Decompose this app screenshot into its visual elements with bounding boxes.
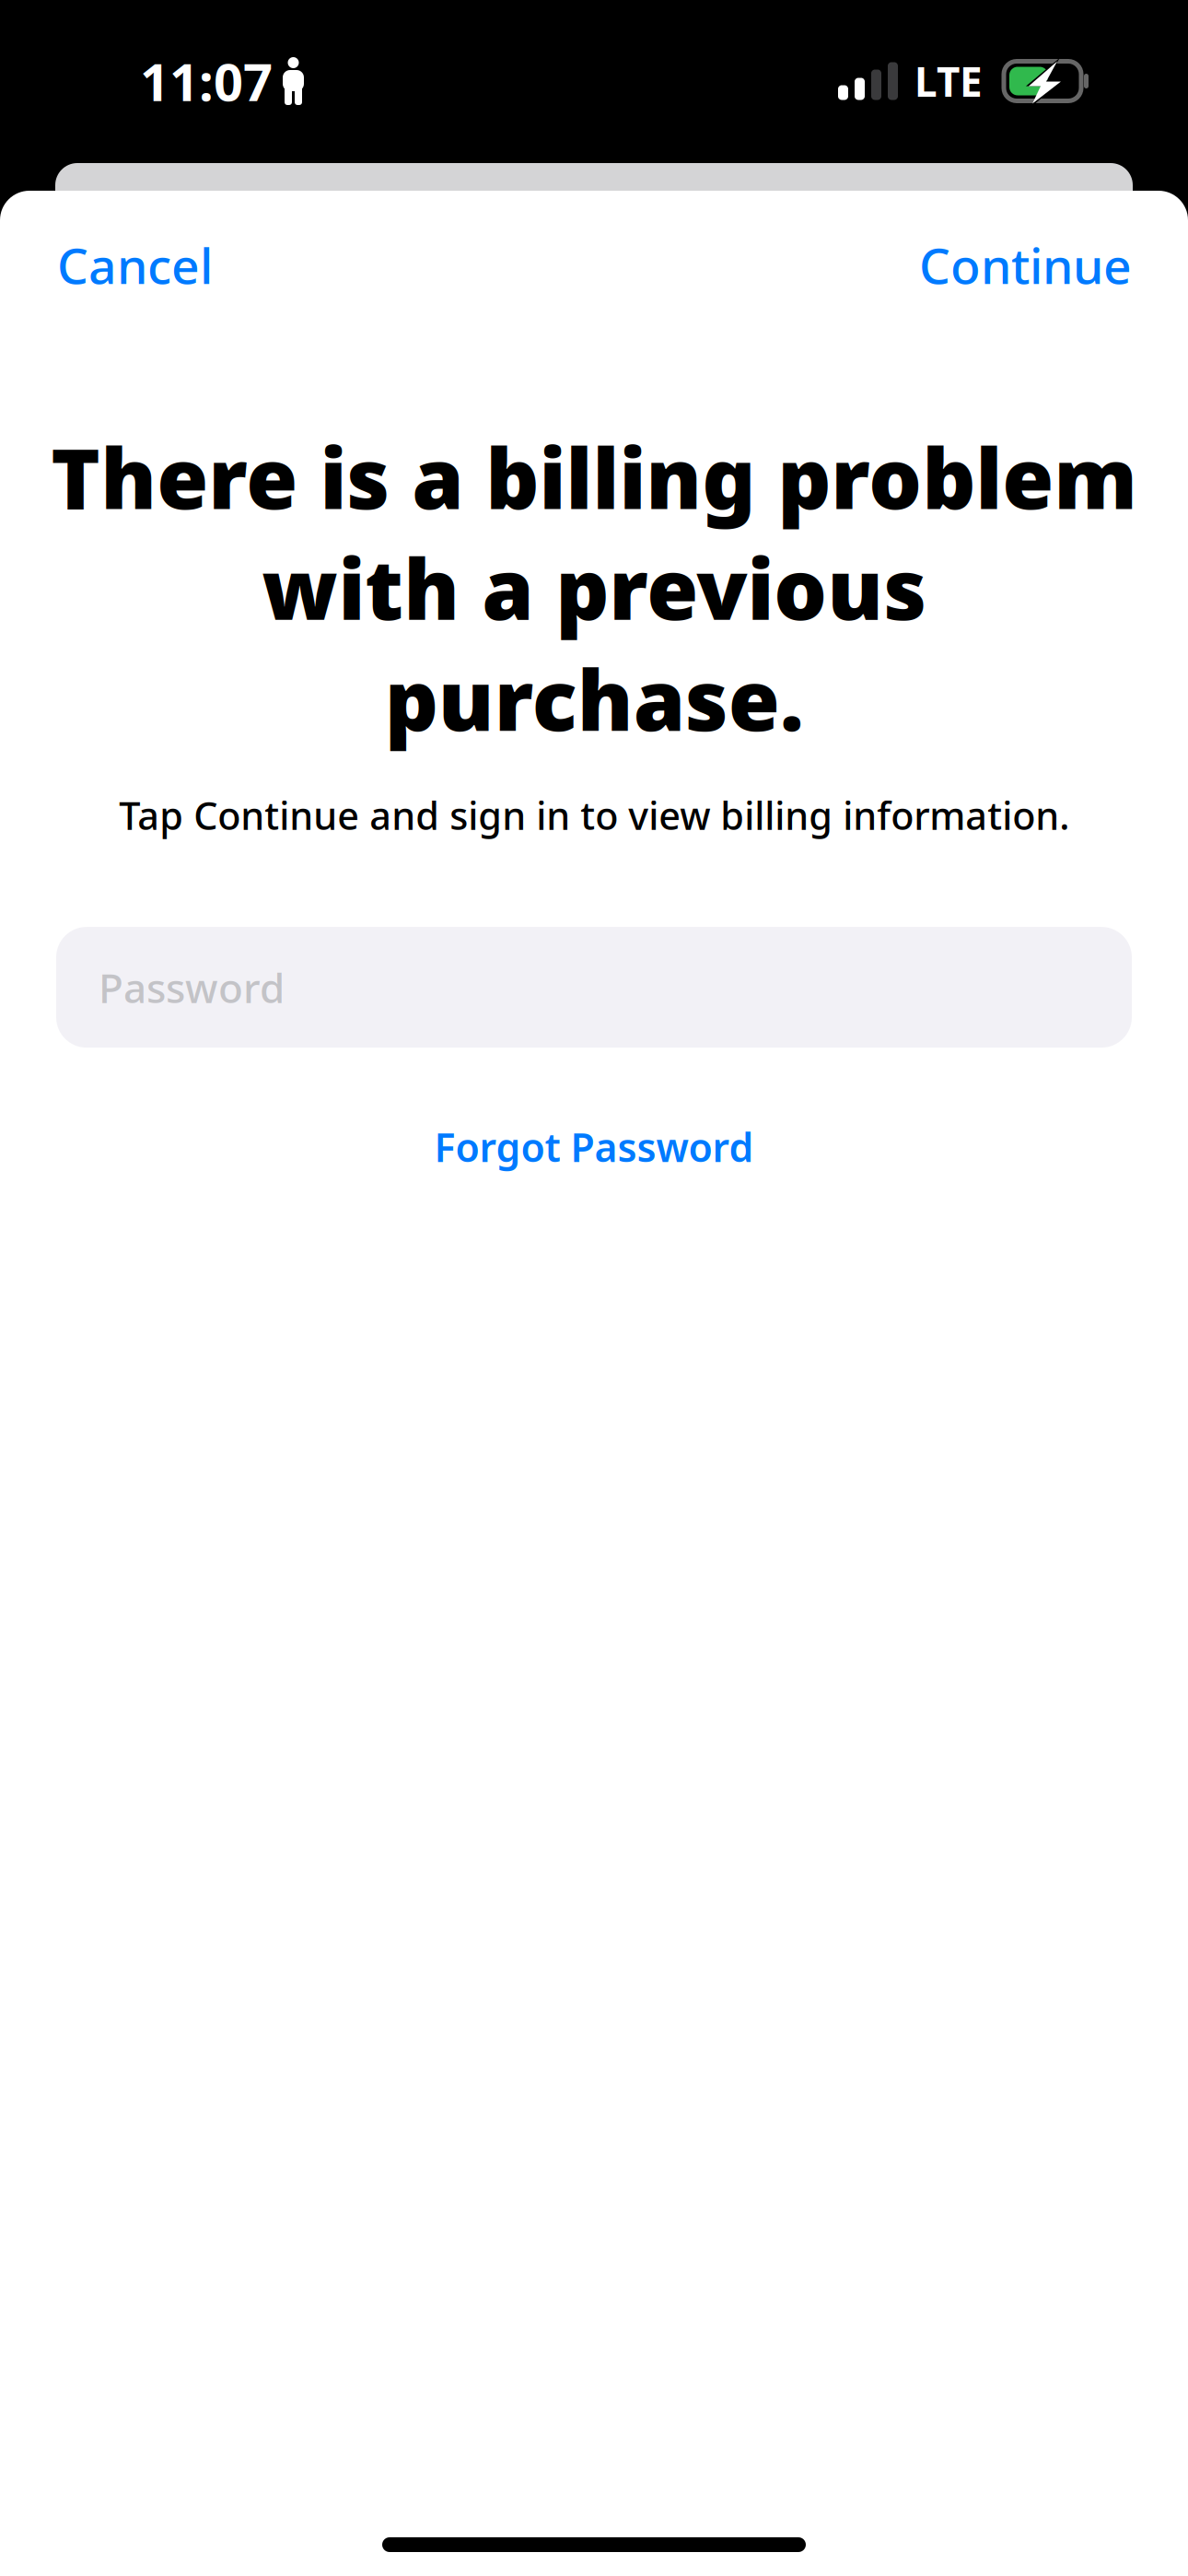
staticText: There is a billing problem with a previo… bbox=[51, 421, 1137, 754]
staticText: Forgot Password bbox=[434, 1121, 754, 1173]
button[interactable]: Cancel bbox=[57, 205, 213, 325]
staticText: Password bbox=[99, 960, 285, 1014]
staticText: 11:07 bbox=[140, 47, 273, 115]
button[interactable]: Continue bbox=[919, 205, 1132, 325]
staticText: Continue bbox=[919, 232, 1132, 297]
staticText: LTE bbox=[914, 54, 983, 108]
staticText: Tap Continue and sign in to view billing… bbox=[119, 790, 1069, 840]
button[interactable]: Forgot Password bbox=[364, 1093, 824, 1201]
staticText: Cancel bbox=[57, 232, 213, 297]
button[interactable]: Password bbox=[56, 927, 1132, 1048]
